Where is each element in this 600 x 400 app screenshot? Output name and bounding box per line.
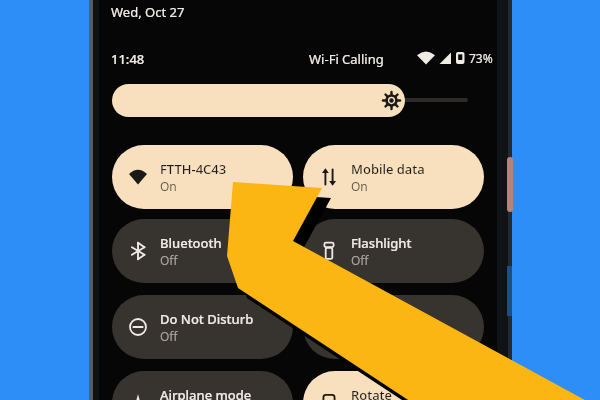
button[interactable]: Airplane mode [112,371,293,400]
staticText: Wed, Oct 27 [111,3,185,21]
staticText: Off [351,252,369,268]
staticText: 11:48 [111,50,145,68]
staticText: On [160,178,177,194]
staticText: Airplane mode [160,386,252,400]
staticText: FTTH-4C43 [160,160,227,178]
staticText: Off [160,328,178,344]
staticText: Flashlight [351,234,412,252]
button[interactable]: Do Not Disturb [112,295,293,359]
staticText: Bluetooth [160,234,222,252]
button[interactable]: Rotate [303,371,484,400]
staticText: Do Not Disturb [160,310,254,328]
staticText: Mobile data [351,160,425,178]
button[interactable]: Power button [507,157,513,212]
button[interactable]: Alarm [303,295,484,359]
staticText: Wi-Fi Calling [309,50,384,68]
staticText: Rotate [351,386,393,400]
staticText: On [351,178,368,194]
button[interactable]: Mobile data [303,145,484,209]
staticText: Off [160,252,178,268]
staticText: 73% [469,50,493,66]
button[interactable]: FTTH-4C43 [112,145,293,209]
button[interactable]: Bluetooth [112,219,293,283]
button[interactable]: Flashlight [303,219,484,283]
button[interactable]: Brightness slider [112,84,468,117]
